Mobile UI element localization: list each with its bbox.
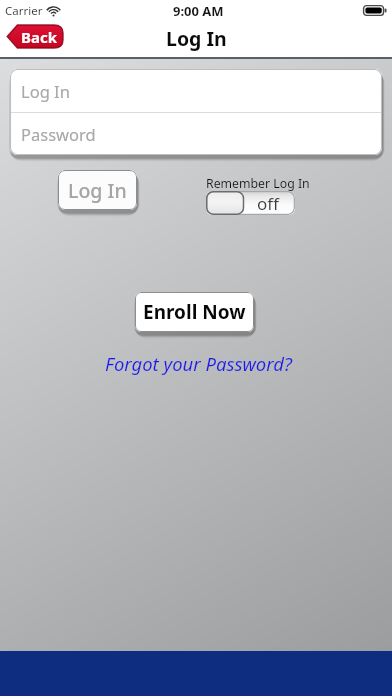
button[interactable]: Log In (10, 69, 382, 112)
button[interactable]: Forgot your Password? (101, 349, 296, 378)
staticText: Password (21, 123, 96, 145)
staticText: Carrier (5, 3, 43, 19)
staticText: Remember Log In (206, 175, 310, 192)
button[interactable]: Enroll Now (135, 292, 254, 332)
staticText: Forgot your Password? (105, 351, 292, 376)
button[interactable]: Log In (58, 170, 137, 210)
staticText: off (257, 192, 279, 215)
staticText: Log In (21, 80, 70, 102)
staticText: Log In (166, 25, 227, 52)
button[interactable]: Back (6, 24, 64, 49)
staticText: Log In (68, 177, 127, 204)
staticText: 9:00 AM (173, 2, 224, 20)
staticText: Enroll Now (143, 299, 246, 325)
button[interactable]: Password (10, 113, 382, 155)
button[interactable]: Remember Log In, off (206, 191, 295, 215)
staticText: Back (21, 27, 58, 47)
